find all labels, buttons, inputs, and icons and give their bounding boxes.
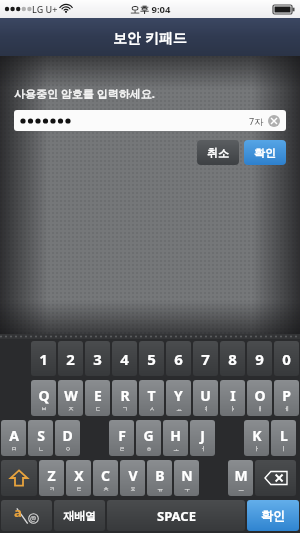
button[interactable]: 확인	[244, 140, 286, 165]
staticText: Q	[38, 386, 50, 405]
button[interactable]: W	[58, 380, 83, 416]
button[interactable]: L	[271, 420, 296, 456]
staticText: J	[200, 426, 205, 445]
button[interactable]: B	[147, 460, 172, 496]
staticText: P	[282, 386, 291, 405]
staticText: ㅜ	[184, 485, 190, 493]
staticText: Z	[47, 466, 56, 485]
staticText: V	[128, 466, 138, 485]
button[interactable]: 7자	[14, 110, 286, 131]
staticText: 2	[66, 349, 75, 369]
staticText: 0	[282, 349, 291, 369]
staticText: I	[230, 386, 236, 405]
button[interactable]: 9	[247, 341, 272, 376]
button[interactable]	[1, 460, 37, 496]
staticText: 보안 키패드	[113, 28, 187, 47]
staticText: 오후 9:04	[130, 3, 171, 16]
staticText: 7자	[249, 115, 264, 127]
staticText: ㅋ	[49, 485, 55, 493]
staticText: ㄹ	[119, 445, 125, 453]
staticText: ㅊ	[103, 485, 109, 493]
button[interactable]: 재배열	[54, 500, 105, 531]
button[interactable]: J	[190, 420, 215, 456]
staticText: ㅡ	[238, 485, 244, 493]
staticText: ㅇ	[65, 445, 71, 453]
button[interactable]: 2	[58, 341, 83, 376]
staticText: ㅌ	[76, 485, 82, 493]
staticText: 취소	[207, 146, 229, 160]
button[interactable]: 6	[166, 341, 191, 376]
staticText: ㅓ	[200, 445, 206, 453]
staticText: 5	[147, 349, 156, 369]
button[interactable]: O	[247, 380, 272, 416]
staticText: ㅈ	[68, 405, 74, 413]
button[interactable]: Q	[31, 380, 56, 416]
button[interactable]: a	[1, 500, 52, 531]
staticText: 확인	[254, 146, 276, 160]
button[interactable]: F	[109, 420, 134, 456]
button[interactable]: A	[1, 420, 26, 456]
button[interactable]: 8	[220, 341, 245, 376]
button[interactable]: U	[193, 380, 218, 416]
staticText: @	[30, 514, 37, 524]
button[interactable]: 취소	[197, 140, 239, 165]
button[interactable]: K	[244, 420, 269, 456]
staticText: W	[64, 386, 78, 405]
button[interactable]: 7	[193, 341, 218, 376]
staticText: 8	[228, 349, 237, 369]
button[interactable]: 확인	[247, 500, 299, 531]
button[interactable]: N	[174, 460, 199, 496]
button[interactable]: G	[136, 420, 161, 456]
staticText: Y	[174, 386, 183, 405]
button[interactable]: M	[228, 460, 253, 496]
staticText: 4	[120, 349, 129, 369]
staticText: a	[14, 503, 22, 521]
staticText: B	[155, 466, 165, 485]
button[interactable]: D	[55, 420, 80, 456]
staticText: U	[200, 386, 211, 405]
button[interactable]: 3	[85, 341, 110, 376]
staticText: E	[94, 386, 102, 405]
staticText: D	[62, 426, 73, 445]
button[interactable]: 5	[139, 341, 164, 376]
button[interactable]: V	[120, 460, 145, 496]
staticText: F	[118, 426, 126, 445]
staticText: ㅐ	[257, 405, 263, 413]
staticText: ㅣ	[281, 445, 287, 453]
button[interactable]: 4	[112, 341, 137, 376]
button[interactable]: 0	[274, 341, 299, 376]
staticText: ㅕ	[203, 405, 209, 413]
button[interactable]: P	[274, 380, 299, 416]
staticText: SPACE	[157, 507, 196, 525]
button[interactable]: Backspace	[255, 460, 296, 496]
staticText: ㅑ	[230, 405, 236, 413]
staticText: M	[234, 466, 248, 485]
staticText: L	[280, 426, 288, 445]
staticText: H	[170, 426, 181, 445]
staticText: 확인	[261, 508, 285, 523]
button[interactable]: T	[139, 380, 164, 416]
button[interactable]: X	[66, 460, 91, 496]
button[interactable]: SPACE	[107, 500, 245, 531]
staticText: ㅅ	[149, 405, 155, 413]
button[interactable]: Y	[166, 380, 191, 416]
button[interactable]: E	[85, 380, 110, 416]
button[interactable]: H	[163, 420, 188, 456]
button[interactable]: I	[220, 380, 245, 416]
staticText: ㄷ	[95, 405, 101, 413]
staticText: ㅗ	[173, 445, 179, 453]
button[interactable]: S	[28, 420, 53, 456]
staticText: ㅎ	[146, 445, 152, 453]
staticText: O	[254, 386, 266, 405]
button[interactable]: R	[112, 380, 137, 416]
staticText: ㅁ	[11, 445, 17, 453]
staticText: ㅏ	[254, 445, 260, 453]
button[interactable]: C	[93, 460, 118, 496]
button[interactable]: Clear	[268, 115, 280, 127]
staticText: N	[181, 466, 193, 485]
staticText: S	[37, 426, 45, 445]
staticText: ㅔ	[284, 405, 290, 413]
button[interactable]: 1	[31, 341, 56, 376]
button[interactable]: Z	[39, 460, 64, 496]
staticText: K	[252, 426, 262, 445]
